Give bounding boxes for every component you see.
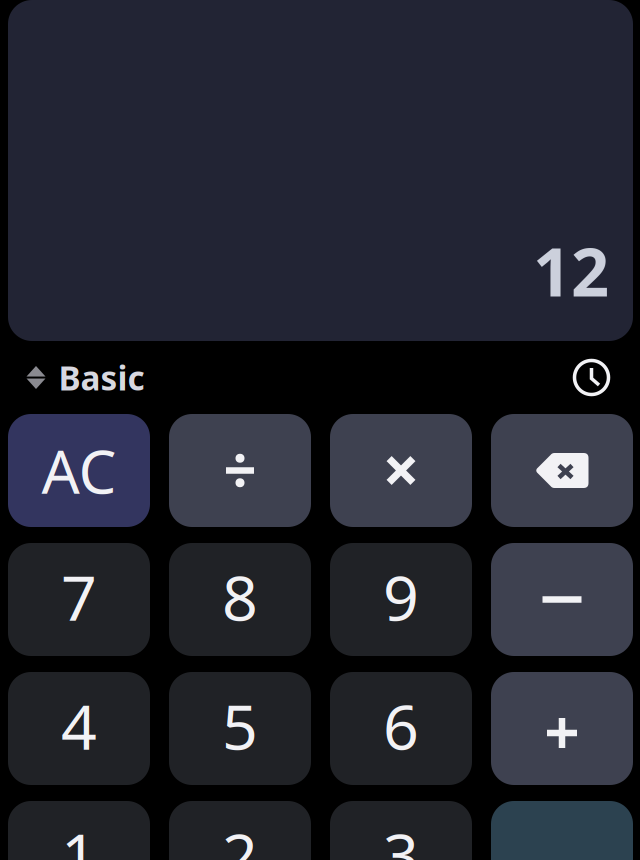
button[interactable]: 8 <box>169 543 311 656</box>
staticText: 1 <box>61 813 97 860</box>
button[interactable]: Multiply <box>330 414 472 527</box>
staticText: 8 <box>222 555 258 638</box>
staticText: Basic <box>58 355 144 400</box>
button[interactable]: 7 <box>8 543 150 656</box>
button[interactable]: Divide <box>169 414 311 527</box>
button[interactable]: Backspace <box>491 414 633 527</box>
staticText: 5 <box>222 684 258 767</box>
button[interactable]: 4 <box>8 672 150 785</box>
button[interactable]: Equals <box>491 801 633 860</box>
button[interactable]: Plus <box>491 672 633 785</box>
button[interactable]: 9 <box>330 543 472 656</box>
staticText: AC <box>41 431 116 510</box>
staticText: 9 <box>383 555 419 638</box>
button[interactable]: Minus <box>491 543 633 656</box>
button[interactable]: 3 <box>330 801 472 860</box>
button[interactable]: 6 <box>330 672 472 785</box>
button[interactable]: 1 <box>8 801 150 860</box>
staticText: 6 <box>383 684 419 767</box>
button[interactable]: AC <box>8 414 150 527</box>
staticText: 12 <box>533 226 609 315</box>
button[interactable]: 2 <box>169 801 311 860</box>
button[interactable]: 5 <box>169 672 311 785</box>
staticText: 4 <box>61 684 97 767</box>
staticText: 3 <box>383 813 419 860</box>
staticText: 2 <box>222 813 258 860</box>
button[interactable]: History <box>551 341 632 414</box>
staticText: 7 <box>61 555 97 638</box>
button[interactable]: Basic <box>8 341 158 414</box>
